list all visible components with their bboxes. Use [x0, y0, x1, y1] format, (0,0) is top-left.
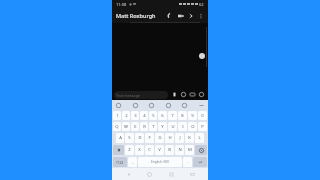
button[interactable]: Y [158, 122, 167, 131]
staticText: S [128, 135, 131, 141]
button[interactable]: Q [113, 122, 121, 131]
staticText: Q [115, 124, 119, 130]
button[interactable]: X [135, 145, 144, 155]
button[interactable]: W [122, 122, 130, 131]
button[interactable]: 4 [140, 111, 148, 120]
staticText: 3 [134, 113, 137, 119]
button[interactable]: L [195, 133, 204, 143]
button[interactable]: Back [123, 169, 133, 179]
button[interactable]: Scroll to bottom [199, 53, 205, 59]
staticText: O [191, 124, 195, 130]
staticText: 11:08 [116, 2, 127, 7]
staticText: K [188, 135, 191, 141]
staticText: Matt Roxburgh [116, 12, 166, 19]
button[interactable]: 5 [149, 111, 157, 120]
button[interactable]: G [155, 133, 164, 143]
button[interactable]: Attach [170, 90, 179, 99]
staticText: , [132, 159, 134, 165]
button[interactable]: 6 [158, 111, 167, 120]
staticText: E [134, 124, 137, 130]
staticText: N [178, 147, 182, 153]
button[interactable]: V [155, 145, 164, 155]
staticText: 4 [143, 113, 146, 119]
staticText: Z [128, 147, 131, 153]
button[interactable]: Toolbar item 3 [148, 102, 155, 109]
button[interactable]: Forward [186, 11, 196, 21]
button[interactable]: Collapse keyboard [198, 102, 205, 109]
staticText: X [138, 147, 141, 153]
staticText: Y [161, 124, 164, 130]
button[interactable]: D [135, 133, 144, 143]
button[interactable]: 7 [168, 111, 177, 120]
button[interactable]: Toolbar item 2 [132, 102, 139, 109]
button[interactable]: M [185, 145, 194, 155]
staticText: 1 [116, 113, 119, 119]
button[interactable]: 9 [188, 111, 197, 120]
staticText: Text message [116, 93, 141, 98]
button[interactable]: U [168, 122, 177, 131]
staticText: ?123 [116, 160, 124, 165]
button[interactable]: Backspace [195, 145, 207, 155]
staticText: V [158, 147, 161, 153]
staticText: P [201, 124, 204, 130]
button[interactable]: P [198, 122, 207, 131]
button[interactable]: , [128, 157, 137, 167]
button[interactable]: H [165, 133, 174, 143]
staticText: T [152, 124, 155, 130]
button[interactable]: T [149, 122, 157, 131]
staticText: 5 [152, 113, 155, 119]
button[interactable]: E [131, 122, 139, 131]
staticText: . [187, 159, 189, 165]
button[interactable]: Text message [114, 91, 168, 99]
button[interactable]: Call [166, 11, 176, 21]
button[interactable]: B [165, 145, 174, 155]
button[interactable]: 3 [131, 111, 139, 120]
staticText: M [188, 147, 192, 153]
staticText: A [119, 135, 122, 141]
button[interactable]: Enter [193, 157, 207, 167]
button[interactable]: I [178, 122, 187, 131]
staticText: 0 [201, 113, 204, 119]
button[interactable]: More options [196, 11, 206, 21]
button[interactable]: Keyboard [187, 169, 197, 179]
button[interactable]: Shift [113, 145, 124, 155]
button[interactable]: Video call [176, 11, 186, 21]
button[interactable]: Toolbar item 4 [165, 102, 172, 109]
button[interactable]: . [183, 157, 192, 167]
button[interactable]: 2 [122, 111, 130, 120]
button[interactable]: K [185, 133, 194, 143]
button[interactable]: Recents [166, 169, 176, 179]
button[interactable]: S [125, 133, 134, 143]
staticText: J [179, 135, 181, 141]
staticText: L [198, 135, 201, 141]
staticText: I [182, 124, 184, 130]
staticText: W [124, 124, 128, 130]
button[interactable]: 0 [198, 111, 207, 120]
staticText: 2 [125, 113, 128, 119]
staticText: 6 [161, 113, 164, 119]
button[interactable]: Toolbar item 5 [181, 102, 188, 109]
button[interactable]: Emoji [179, 90, 188, 99]
staticText: 9 [191, 113, 194, 119]
button[interactable]: F [145, 133, 154, 143]
button[interactable]: Z [125, 145, 134, 155]
button[interactable]: Toolbar item 1 [115, 102, 122, 109]
button[interactable]: Home [144, 169, 154, 179]
staticText: 62 [199, 2, 204, 7]
staticText: U [171, 124, 175, 130]
button[interactable]: N [175, 145, 184, 155]
button[interactable]: ?123 [113, 157, 127, 167]
button[interactable]: 8 [178, 111, 187, 120]
button[interactable]: O [188, 122, 197, 131]
button[interactable]: R [140, 122, 148, 131]
button[interactable]: English (UK) [138, 157, 182, 167]
button[interactable]: C [145, 145, 154, 155]
staticText: 7 [171, 113, 174, 119]
staticText: C [148, 147, 151, 153]
button[interactable]: Camera [188, 90, 197, 99]
button[interactable]: Send [197, 90, 206, 99]
button[interactable]: 1 [113, 111, 121, 120]
button[interactable]: A [116, 133, 124, 143]
button[interactable]: J [175, 133, 184, 143]
staticText: 8 [181, 113, 184, 119]
